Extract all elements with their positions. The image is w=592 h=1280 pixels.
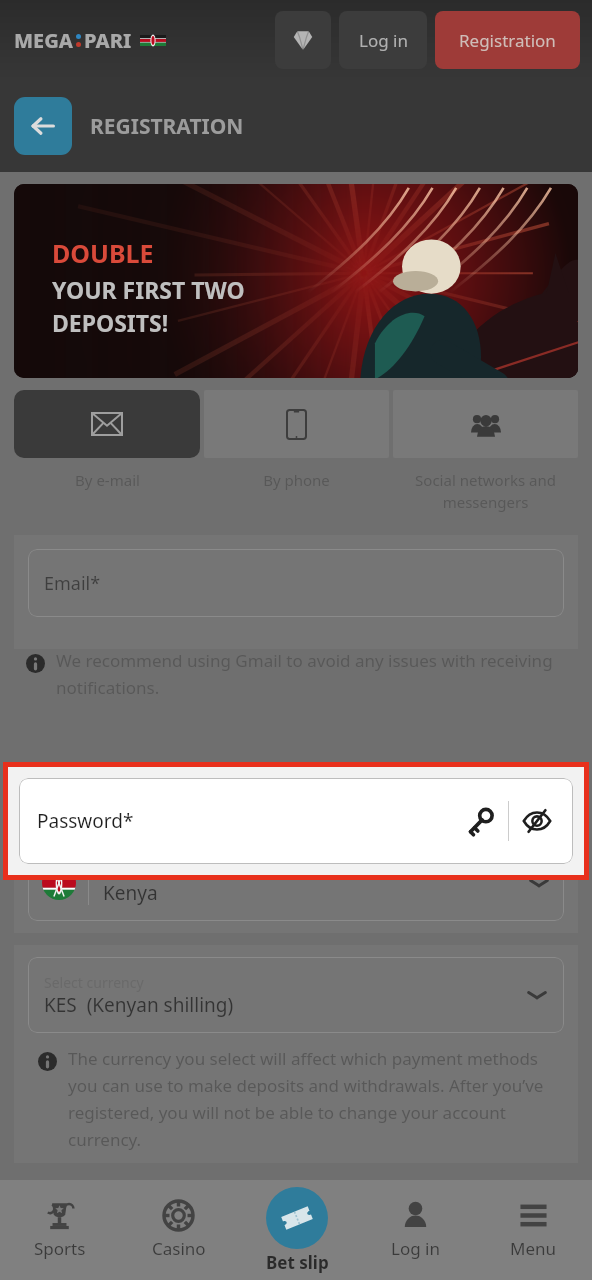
button[interactable]: Back [14, 97, 72, 155]
staticText: The currency you select will affect whic… [68, 1047, 564, 1151]
staticText: Social networks and messengers [393, 470, 578, 513]
staticText: PARI [84, 27, 132, 54]
button[interactable]: Sports [0, 1180, 119, 1280]
button[interactable]: Registration [435, 11, 580, 69]
button[interactable]: DOUBLE [14, 184, 578, 378]
button[interactable]: Social networks and messengers [393, 390, 578, 513]
staticText: DEPOSITS! [52, 307, 169, 338]
button[interactable]: Email* [28, 549, 564, 617]
staticText: Password* [37, 808, 134, 834]
staticText: By e-mail [75, 470, 140, 490]
button[interactable]: Menu [474, 1180, 592, 1280]
button[interactable]: Select country [28, 845, 564, 921]
staticText: Select currency [44, 973, 144, 992]
staticText: By phone [263, 470, 330, 490]
staticText: Registration [459, 29, 556, 52]
staticText: MEGA [14, 27, 73, 54]
button[interactable]: Generate password [458, 799, 502, 843]
button[interactable]: Password* [19, 778, 573, 864]
button[interactable]: By e-mail [14, 390, 200, 490]
staticText: Log in [391, 1237, 440, 1260]
button[interactable]: Log in [356, 1180, 474, 1280]
staticText: KES (Kenyan shilling) [44, 992, 234, 1018]
staticText: We recommend using Gmail to avoid any is… [56, 649, 576, 699]
staticText: DOUBLE [52, 236, 154, 270]
button[interactable]: Show password [515, 799, 559, 843]
staticText: Log in [359, 29, 408, 52]
button[interactable]: Bet slip [238, 1187, 356, 1274]
button[interactable]: By phone [204, 390, 389, 490]
staticText: Kenya [103, 880, 158, 906]
staticText: Select country [103, 861, 196, 880]
button[interactable]: Log in [339, 11, 427, 69]
staticText: Casino [152, 1237, 206, 1260]
button[interactable]: Casino [119, 1180, 238, 1280]
staticText: Email* [44, 571, 101, 596]
staticText: YOUR FIRST TWO [52, 274, 245, 305]
button[interactable]: VIP [275, 11, 331, 69]
button[interactable]: MEGA [14, 21, 166, 60]
staticText: REGISTRATION [90, 112, 244, 141]
staticText: Sports [34, 1237, 86, 1260]
button[interactable]: Select currency [28, 957, 564, 1033]
staticText: Menu [510, 1237, 557, 1260]
staticText: Bet slip [266, 1251, 329, 1274]
